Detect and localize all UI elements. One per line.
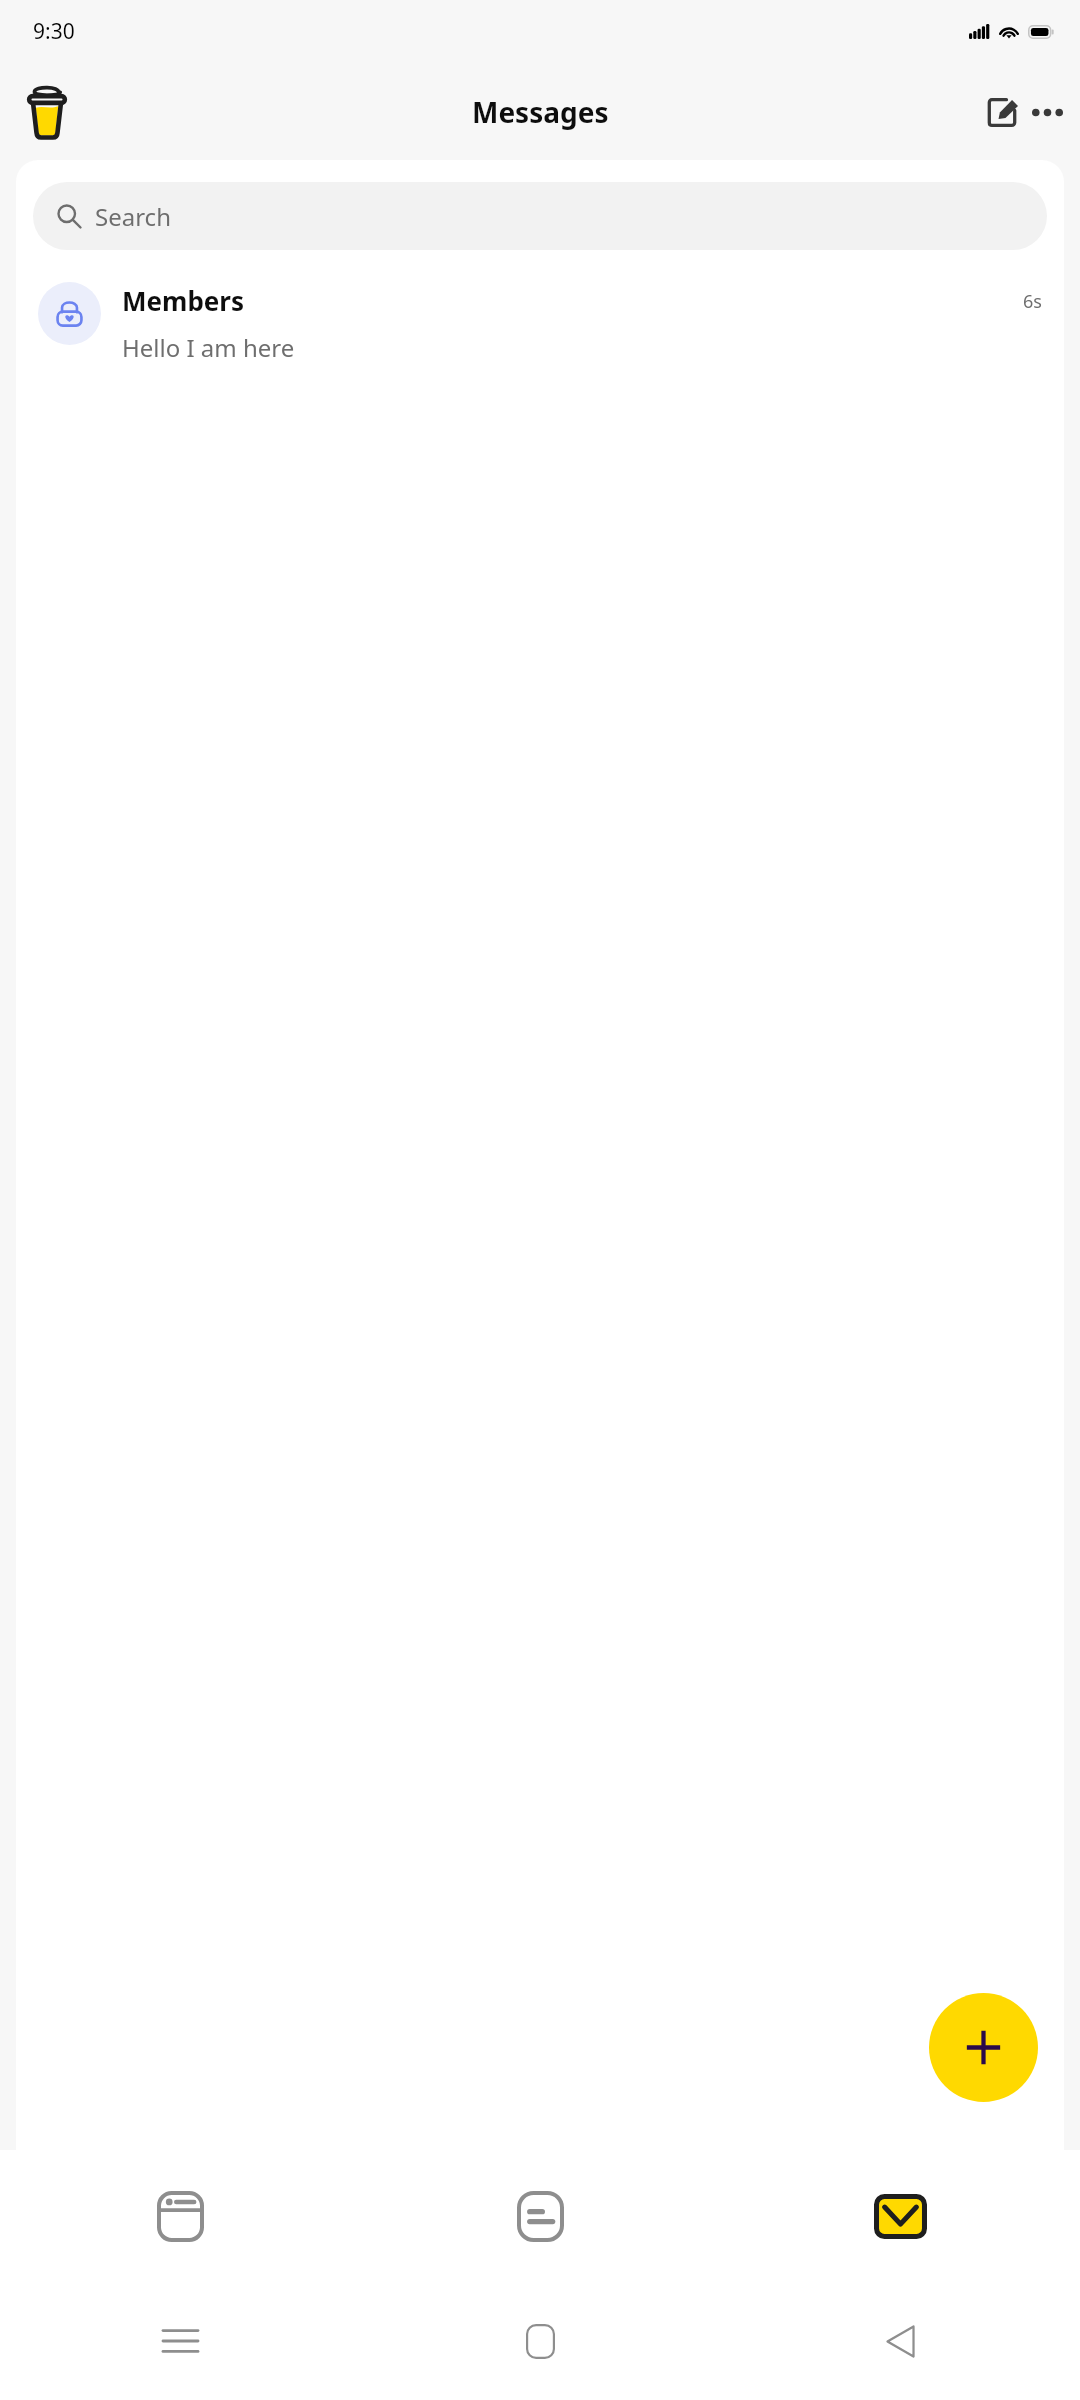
staticText: Messages	[472, 93, 609, 131]
button[interactable]: Recent apps	[0, 2282, 360, 2400]
button[interactable]: Members	[16, 278, 1064, 368]
button[interactable]: Compose message	[979, 89, 1025, 135]
staticText: 9:30	[33, 17, 75, 46]
button[interactable]: New message	[929, 1993, 1038, 2102]
button[interactable]: Notes	[360, 2150, 720, 2282]
button[interactable]: Search	[33, 182, 1047, 250]
staticText: Members	[122, 283, 245, 318]
button[interactable]: Messages	[720, 2150, 1080, 2282]
staticText: 6s	[1023, 289, 1042, 314]
button[interactable]: Back	[720, 2282, 1080, 2400]
staticText: Search	[95, 200, 171, 233]
button[interactable]: App logo	[16, 81, 78, 143]
button[interactable]: More options	[1026, 91, 1068, 133]
staticText: Hello I am here	[122, 331, 295, 364]
button[interactable]: Wallet	[0, 2150, 360, 2282]
button[interactable]: Home	[360, 2282, 720, 2400]
